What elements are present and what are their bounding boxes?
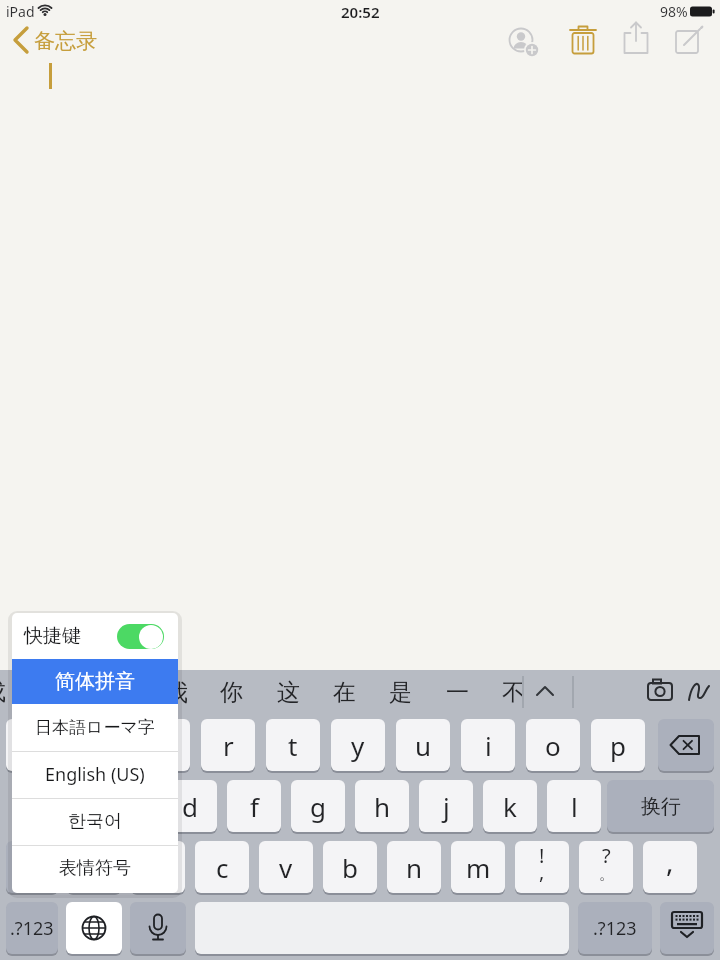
button[interactable]: z xyxy=(67,841,121,893)
staticText: q xyxy=(25,728,41,763)
staticText: 不 xyxy=(502,678,525,707)
staticText: .?123 xyxy=(593,916,637,941)
button[interactable]: o xyxy=(526,719,580,771)
button[interactable]: c xyxy=(195,841,249,893)
button[interactable] xyxy=(12,704,178,751)
staticText: 快捷键 xyxy=(24,624,81,648)
button[interactable]: y xyxy=(331,719,385,771)
staticText: l xyxy=(571,789,578,824)
button[interactable]: 戍 xyxy=(0,677,16,707)
button[interactable] xyxy=(644,676,676,708)
button[interactable]: f xyxy=(227,780,281,832)
button[interactable]: 这 xyxy=(266,677,310,707)
staticText: u xyxy=(415,728,432,763)
button[interactable]: 一 xyxy=(435,677,479,707)
button[interactable]: s xyxy=(99,780,153,832)
staticText: n xyxy=(406,850,423,885)
button[interactable] xyxy=(674,22,706,58)
button[interactable] xyxy=(12,613,178,659)
staticText: b xyxy=(342,850,358,885)
button[interactable]: b xyxy=(323,841,377,893)
button[interactable] xyxy=(12,798,178,845)
button[interactable] xyxy=(12,845,178,892)
button[interactable] xyxy=(12,751,178,798)
button[interactable] xyxy=(500,22,542,58)
staticText: c xyxy=(216,850,229,885)
button[interactable]: .?123 xyxy=(6,902,58,954)
button[interactable]: e xyxy=(136,719,190,771)
button[interactable]: 在 xyxy=(322,677,366,707)
staticText: 简体拼音 xyxy=(55,669,135,694)
button[interactable] xyxy=(568,22,600,58)
staticText: j xyxy=(443,789,450,824)
button[interactable]: k xyxy=(483,780,537,832)
button[interactable]: 不 xyxy=(491,677,535,707)
button[interactable] xyxy=(8,24,118,58)
staticText: ! xyxy=(539,842,545,869)
staticText: v xyxy=(279,850,293,885)
staticText: 表情符号 xyxy=(59,857,131,880)
staticText: t xyxy=(288,728,298,763)
button[interactable] xyxy=(658,719,714,771)
staticText: iPad xyxy=(6,2,35,20)
button[interactable]: j xyxy=(419,780,473,832)
button[interactable]: , xyxy=(643,841,697,893)
button[interactable]: v xyxy=(259,841,313,893)
button[interactable]: 是 xyxy=(378,677,422,707)
button[interactable] xyxy=(12,659,178,704)
staticText: g xyxy=(310,789,326,824)
button[interactable]: d xyxy=(163,780,217,832)
button[interactable]: m xyxy=(451,841,505,893)
staticText: m xyxy=(466,850,491,885)
button[interactable] xyxy=(66,902,122,954)
staticText: 备忘录 xyxy=(34,28,97,54)
staticText: , xyxy=(539,858,545,885)
staticText: z xyxy=(88,850,101,885)
staticText: 。 xyxy=(599,865,614,884)
staticText: w xyxy=(88,728,109,763)
staticText: d xyxy=(182,789,198,824)
button[interactable]: g xyxy=(291,780,345,832)
button[interactable]: l xyxy=(547,780,601,832)
staticText: 在 xyxy=(333,678,356,707)
button[interactable]: n xyxy=(387,841,441,893)
button[interactable] xyxy=(622,20,652,58)
button[interactable]: r xyxy=(201,719,255,771)
staticText: o xyxy=(545,728,561,763)
button[interactable]: x xyxy=(131,841,185,893)
button[interactable]: t xyxy=(266,719,320,771)
button[interactable]: p xyxy=(591,719,645,771)
staticText: 한국어 xyxy=(68,810,122,833)
button[interactable] xyxy=(117,624,164,649)
staticText: 我 xyxy=(165,678,188,707)
staticText: 一 xyxy=(446,678,469,707)
button[interactable] xyxy=(686,676,714,708)
staticText: k xyxy=(503,789,517,824)
staticText: 戍 xyxy=(0,678,6,707)
button[interactable] xyxy=(530,676,560,708)
button[interactable]: u xyxy=(396,719,450,771)
button[interactable] xyxy=(6,841,58,893)
button[interactable]: ! xyxy=(515,841,569,893)
staticText: 你 xyxy=(220,678,243,707)
button[interactable]: i xyxy=(461,719,515,771)
staticText: ? xyxy=(602,842,611,869)
button[interactable] xyxy=(130,902,186,954)
button[interactable]: w xyxy=(71,719,125,771)
staticText: i xyxy=(485,728,492,763)
button[interactable]: .?123 xyxy=(578,902,652,954)
button[interactable]: 换行 xyxy=(607,780,714,832)
button[interactable]: 你 xyxy=(209,677,253,707)
button[interactable]: q xyxy=(6,719,60,771)
button[interactable]: 我 xyxy=(154,677,198,707)
button[interactable]: ? xyxy=(579,841,633,893)
button[interactable] xyxy=(660,902,714,954)
staticText: 是 xyxy=(389,678,412,707)
staticText: h xyxy=(374,789,391,824)
button[interactable]: a xyxy=(35,780,89,832)
staticText: 换行 xyxy=(641,794,681,819)
staticText: 20:52 xyxy=(341,2,380,20)
button[interactable]: h xyxy=(355,780,409,832)
